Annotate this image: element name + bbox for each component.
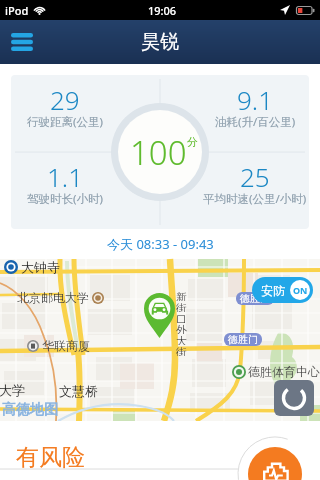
staticText: 大学 [0,382,25,398]
staticText: 油耗(升/百公里) [215,114,296,130]
staticText: 德胜门 [228,333,258,346]
staticText: 1.1 [47,159,84,194]
staticText: 安防 [261,283,285,298]
staticText: 平均时速(公里/小时) [203,191,307,207]
staticText: 口 [176,312,187,323]
staticText: 街 [176,301,187,312]
staticText: 外 [176,323,187,334]
staticText: 29 [50,82,80,117]
button[interactable]: Menu [4,24,40,60]
button[interactable]: 安防 [252,277,313,303]
staticText: 今天 08:33 - 09:43 [107,235,214,253]
staticText: 华联商厦 [42,338,90,353]
staticText: 19:06 [148,3,177,18]
staticText: 有风险 [16,443,85,472]
staticText: 行驶距离(公里) [27,114,103,130]
staticText: 25 [240,159,270,194]
staticText: ON [293,284,308,296]
staticText: 驾驶时长(小时) [27,191,103,207]
staticText: 德胜体育中心 [248,364,320,379]
staticText: 9.1 [237,82,274,117]
staticText: 大钟寺 [21,259,60,275]
staticText: 文慧桥 [59,383,98,399]
button[interactable]: Refresh [274,380,314,416]
staticText: 100 [130,130,187,175]
staticText: 北京邮电大学 [17,290,89,305]
button[interactable]: Vehicle diagnostics [248,447,302,480]
staticText: 德胜门 [240,292,270,305]
staticText: 分 [187,135,198,149]
staticText: 新 [176,290,187,301]
staticText: iPod [5,3,29,18]
staticText: 大 [176,334,187,345]
staticText: 街 [176,345,187,356]
staticText: 高德地图 [2,401,58,419]
staticText: 昊锐 [141,30,179,54]
